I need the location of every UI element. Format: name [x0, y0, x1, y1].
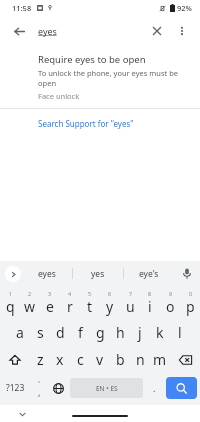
staticText: m: [153, 350, 167, 369]
button[interactable]: s: [30, 319, 50, 346]
staticText: Search Support for "eyes": [38, 118, 134, 129]
button[interactable]: eye's: [124, 261, 174, 286]
staticText: q: [6, 297, 15, 316]
staticText: ,: [38, 386, 41, 398]
button[interactable]: x: [50, 346, 70, 373]
staticText: eyes: [38, 25, 144, 37]
button[interactable]: 0: [180, 286, 200, 319]
button[interactable]: n: [130, 346, 150, 373]
staticText: 7: [129, 290, 133, 297]
staticText: o: [166, 297, 175, 316]
staticText: 0: [189, 290, 193, 297]
button[interactable]: Require eyes to be open: [0, 46, 200, 108]
staticText: 5: [88, 290, 92, 297]
staticText: ?123: [6, 382, 25, 394]
button[interactable]: k: [150, 319, 170, 346]
staticText: f: [78, 323, 83, 342]
button[interactable]: h: [110, 319, 130, 346]
button[interactable]: Expand suggestions: [5, 266, 21, 282]
button[interactable]: yes: [73, 261, 123, 286]
staticText: k: [156, 323, 164, 342]
button[interactable]: 8: [140, 286, 160, 319]
button[interactable]: 3: [40, 286, 60, 319]
staticText: 4: [68, 290, 72, 297]
button[interactable]: Search Support for "eyes": [0, 109, 200, 138]
button[interactable]: Clear search: [144, 18, 170, 44]
staticText: eyes: [38, 268, 56, 280]
staticText: 8: [148, 290, 152, 297]
button[interactable]: eyes: [21, 261, 72, 286]
button[interactable]: z: [30, 346, 50, 373]
button[interactable]: 9: [160, 286, 180, 319]
staticText: l: [178, 323, 182, 342]
button[interactable]: 7: [120, 286, 140, 319]
button[interactable]: b: [110, 346, 130, 373]
button[interactable]: g: [90, 319, 110, 346]
staticText: 92%: [177, 3, 192, 13]
staticText: i: [148, 297, 152, 316]
button[interactable]: Period: [145, 373, 163, 403]
staticText: v: [96, 350, 104, 369]
button[interactable]: Change language: [48, 373, 68, 403]
staticText: x: [56, 350, 64, 369]
button[interactable]: j: [130, 319, 150, 346]
staticText: s: [37, 323, 44, 342]
button[interactable]: v: [90, 346, 110, 373]
staticText: °: [38, 379, 41, 386]
staticText: y: [106, 297, 114, 316]
staticText: 2: [28, 290, 32, 297]
button[interactable]: m: [150, 346, 170, 373]
button[interactable]: More options: [170, 19, 194, 43]
button[interactable]: 4: [60, 286, 80, 319]
button[interactable]: 6: [100, 286, 120, 319]
staticText: p: [186, 297, 195, 316]
button[interactable]: Shift: [0, 346, 30, 373]
button[interactable]: Search: [166, 377, 197, 399]
staticText: 9: [169, 290, 173, 297]
staticText: w: [24, 297, 36, 316]
staticText: t: [87, 297, 93, 316]
staticText: b: [116, 350, 125, 369]
staticText: a: [16, 323, 24, 342]
button[interactable]: Back: [6, 18, 32, 44]
staticText: 1: [9, 290, 13, 297]
button[interactable]: Backspace: [170, 346, 200, 373]
button[interactable]: d: [50, 319, 70, 346]
button[interactable]: 2: [20, 286, 40, 319]
staticText: Require eyes to be open: [38, 53, 146, 66]
staticText: n: [136, 350, 145, 369]
button[interactable]: f: [70, 319, 90, 346]
button[interactable]: 1: [0, 286, 20, 319]
staticText: u: [126, 297, 135, 316]
staticText: Face unlock: [38, 91, 80, 101]
staticText: 3: [48, 290, 52, 297]
staticText: r: [67, 297, 73, 316]
staticText: .: [153, 382, 156, 394]
button[interactable]: c: [70, 346, 90, 373]
staticText: 11:58: [12, 3, 32, 13]
button[interactable]: l: [170, 319, 190, 346]
staticText: 6: [108, 290, 112, 297]
staticText: c: [77, 350, 84, 369]
staticText: j: [138, 323, 142, 342]
staticText: EN • ES: [96, 384, 118, 393]
button[interactable]: Hide keyboard: [16, 408, 28, 420]
staticText: h: [116, 323, 125, 342]
staticText: yes: [91, 268, 105, 280]
staticText: eye's: [139, 268, 159, 280]
button[interactable]: ?123: [0, 373, 30, 403]
button[interactable]: 5: [80, 286, 100, 319]
staticText: g: [96, 323, 105, 342]
button[interactable]: a: [10, 319, 30, 346]
button[interactable]: Comma: [30, 373, 48, 403]
staticText: d: [56, 323, 65, 342]
staticText: e: [46, 297, 54, 316]
staticText: To unlock the phone, your eyes must be o…: [38, 68, 190, 88]
staticText: z: [37, 350, 44, 369]
button[interactable]: Voice input: [174, 261, 200, 286]
button[interactable]: EN • ES: [70, 378, 143, 398]
